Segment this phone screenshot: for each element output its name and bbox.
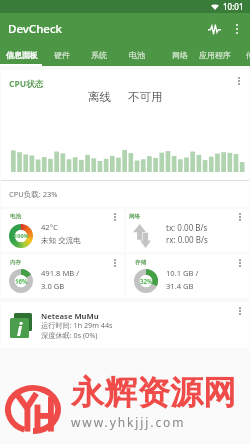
staticText: tx: 0.00 B/s rx: 0.00 B/s [166,222,208,245]
button[interactable]: 应用程序 [199,44,231,66]
button[interactable]: More [232,255,248,271]
button[interactable]: 电池 [118,44,155,66]
button[interactable]: 硬件 [44,44,80,66]
staticText: 网络 [129,213,140,220]
button[interactable]: More [231,73,247,89]
staticText: 10.1 GB / 31.4 GB [166,268,199,291]
staticText: 100% [14,232,29,240]
staticText: 42°C 未知 交流电 [41,222,81,245]
staticText: 内存 [10,259,21,266]
button[interactable]: CPU状态 [1,70,249,207]
staticText: 491.8 MB / 3.0 GB [41,268,80,291]
button[interactable]: 内存 [1,255,124,298]
staticText: 硬件 [54,50,70,60]
staticText: 传 [246,50,250,60]
button[interactable]: More [107,209,123,225]
staticText: 电池 [129,50,145,60]
button[interactable]: 信息面板 [0,44,44,66]
staticText: 存储 [135,259,146,266]
staticText: CPU负载: 23% [9,189,58,199]
staticText: www.yhkjjj.com [71,414,186,430]
staticText: 应用程序 [199,50,231,60]
staticText: 16% [15,277,28,285]
staticText: 系统 [91,50,107,60]
staticText: 10:01 [223,1,244,12]
staticText: 不可用 [128,90,163,104]
staticText: i [17,318,23,338]
button[interactable]: i [1,302,249,348]
button[interactable]: 存储 [126,255,249,298]
staticText: 运行时间: 1h 29m 44s 深度休眠: 0s (0%) [41,320,113,340]
button[interactable]: More options [226,18,248,40]
staticText: 信息面板 [6,50,38,60]
button[interactable]: More [232,303,248,319]
staticText: CPU状态 [9,78,44,90]
button[interactable]: More [232,209,248,225]
button[interactable]: 系统 [80,44,118,66]
staticText: 离线 [88,90,111,104]
button[interactable]: 网络 [126,209,249,252]
staticText: 32% [140,277,153,285]
button[interactable]: Monitor [202,17,226,41]
staticText: DevCheck [8,21,63,37]
staticText: 网络 [172,50,188,60]
staticText: 永辉资源网 [71,372,236,414]
button[interactable]: 传 [240,44,250,66]
button[interactable]: 网络 [161,44,199,66]
button[interactable]: 电池 [1,209,124,252]
button[interactable]: More [107,255,123,271]
staticText: Netease MuMu [41,311,99,321]
staticText: 电池 [10,213,21,220]
